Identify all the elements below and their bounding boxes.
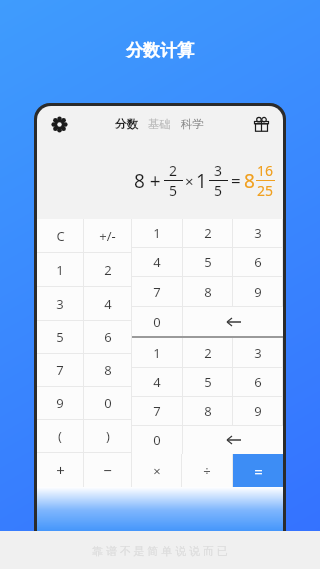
button[interactable]: 基础	[143, 113, 176, 135]
staticText: =	[254, 461, 263, 481]
button[interactable]: +/-	[84, 219, 131, 252]
staticText: 8	[204, 402, 212, 420]
button[interactable]: )	[84, 420, 131, 452]
button[interactable]: 8	[84, 354, 131, 386]
staticText: 25	[257, 181, 274, 200]
button[interactable]: 7	[132, 277, 182, 306]
button[interactable]: +	[37, 453, 83, 487]
staticText: ×	[153, 462, 161, 480]
button[interactable]: −	[84, 453, 131, 487]
button[interactable]: 4	[84, 287, 131, 320]
staticText: −	[103, 460, 112, 480]
staticText: 2	[169, 161, 178, 180]
button[interactable]: 3	[37, 287, 83, 320]
button[interactable]: Settings	[46, 111, 72, 137]
staticText: 3	[254, 224, 262, 242]
button[interactable]: 2	[183, 219, 232, 247]
staticText: 0	[153, 431, 161, 449]
button[interactable]: Backspace	[183, 426, 283, 454]
button[interactable]: 6	[84, 321, 131, 353]
button[interactable]: 8	[183, 397, 232, 425]
button[interactable]: (	[37, 420, 83, 452]
button[interactable]: 8	[183, 277, 232, 306]
staticText: )	[106, 427, 110, 445]
staticText: 1	[196, 168, 207, 194]
button[interactable]: 5	[37, 321, 83, 353]
staticText: 5	[56, 328, 64, 346]
button[interactable]: 6	[233, 368, 282, 396]
staticText: 8	[244, 168, 255, 194]
staticText: 8	[104, 361, 112, 379]
button[interactable]: 6	[233, 248, 282, 276]
staticText: 分数	[115, 117, 138, 131]
staticText: 5	[204, 253, 212, 271]
button[interactable]: 4	[132, 248, 182, 276]
staticText: =	[231, 169, 241, 192]
staticText: 1	[153, 344, 161, 362]
staticText: 6	[254, 253, 262, 271]
button[interactable]: C	[37, 219, 83, 252]
button[interactable]: 5	[183, 248, 232, 276]
button[interactable]: 4	[132, 368, 182, 396]
staticText: (	[58, 427, 62, 445]
button[interactable]: ×	[132, 454, 181, 487]
button[interactable]: 7	[132, 397, 182, 425]
staticText: 4	[153, 253, 161, 271]
button[interactable]: 9	[233, 397, 282, 425]
button[interactable]: Backspace	[183, 307, 283, 336]
button[interactable]: 分数	[110, 113, 143, 135]
staticText: 2	[204, 344, 212, 362]
staticText: 7	[153, 402, 161, 420]
staticText: +/-	[99, 227, 116, 245]
button[interactable]: 0	[132, 426, 182, 454]
staticText: 5	[214, 181, 223, 200]
button[interactable]: 1	[132, 338, 182, 367]
staticText: 科学	[181, 117, 204, 131]
staticText: 9	[254, 283, 262, 301]
button[interactable]: 2	[183, 338, 232, 367]
staticText: 6	[254, 373, 262, 391]
button[interactable]: 科学	[176, 113, 209, 135]
staticText: 4	[153, 373, 161, 391]
staticText: 8 +	[134, 168, 161, 194]
button[interactable]: 3	[233, 338, 282, 367]
staticText: ÷	[203, 462, 211, 480]
staticText: ×	[185, 171, 194, 191]
staticText: 1	[56, 261, 64, 279]
staticText: 0	[153, 313, 161, 331]
staticText: 5	[204, 373, 212, 391]
button[interactable]: 1	[132, 219, 182, 247]
button[interactable]: =	[233, 454, 283, 487]
button[interactable]: 9	[37, 387, 83, 419]
button[interactable]: 9	[233, 277, 282, 306]
button[interactable]: 7	[37, 354, 83, 386]
staticText: 0	[104, 394, 112, 412]
staticText: 16	[257, 161, 274, 180]
staticText: 2	[204, 224, 212, 242]
button[interactable]: 2	[84, 253, 131, 286]
staticText: 3	[254, 344, 262, 362]
staticText: 9	[254, 402, 262, 420]
staticText: C	[56, 227, 65, 245]
button[interactable]: 3	[233, 219, 282, 247]
button[interactable]: 0	[132, 307, 182, 336]
staticText: 1	[153, 224, 161, 242]
staticText: 6	[104, 328, 112, 346]
staticText: 9	[56, 394, 64, 412]
button[interactable]: ÷	[182, 454, 232, 487]
staticText: 3	[56, 295, 64, 313]
button[interactable]: 5	[183, 368, 232, 396]
staticText: +	[56, 460, 65, 480]
button[interactable]: 0	[84, 387, 131, 419]
staticText: 7	[153, 283, 161, 301]
staticText: 2	[104, 261, 112, 279]
button[interactable]: Gift	[248, 111, 274, 137]
staticText: 8	[204, 283, 212, 301]
staticText: 7	[56, 361, 64, 379]
staticText: 5	[169, 181, 178, 200]
button[interactable]: 1	[37, 253, 83, 286]
staticText: 3	[214, 161, 223, 180]
staticText: 基础	[148, 117, 171, 131]
staticText: 4	[104, 295, 112, 313]
staticText: 分数计算	[126, 40, 194, 61]
